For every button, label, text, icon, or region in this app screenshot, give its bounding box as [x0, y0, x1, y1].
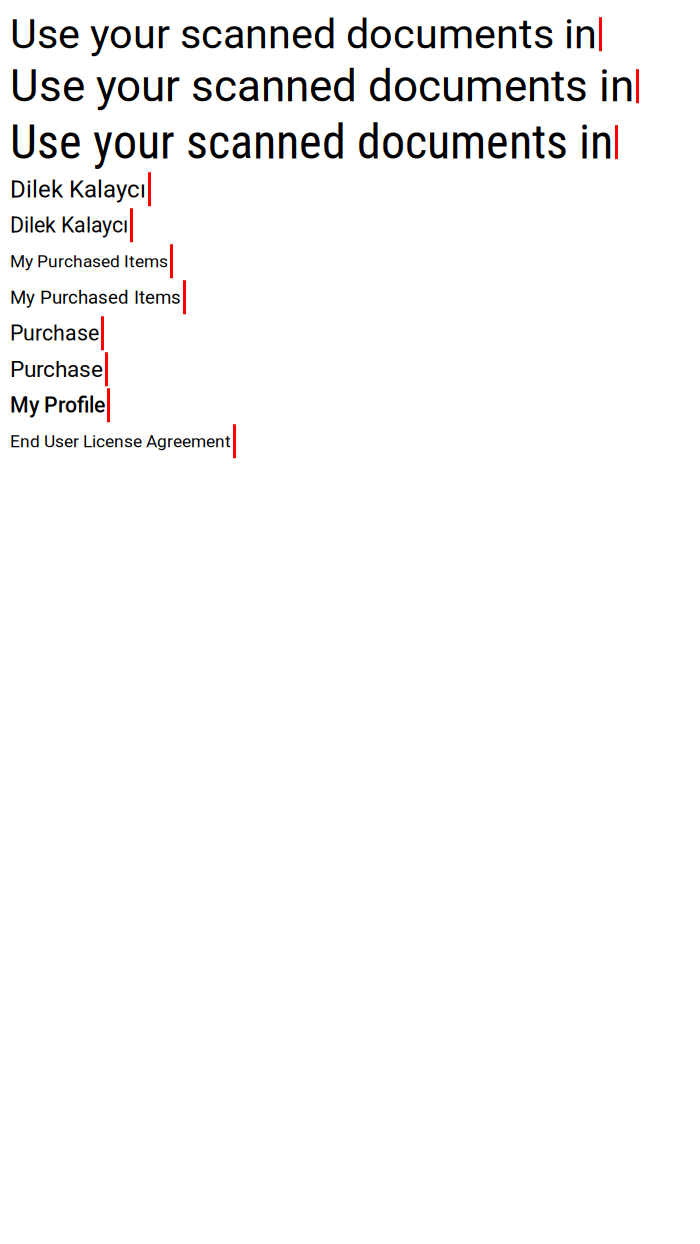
- staticText: Purchase: [10, 321, 99, 346]
- staticText: Dilek Kalaycı: [10, 213, 128, 238]
- staticText: End User License Agreement: [10, 431, 231, 451]
- staticText: Use your scanned documents in: [10, 10, 597, 58]
- staticText: Use your scanned documents in: [10, 114, 613, 170]
- staticText: Purchase: [10, 356, 103, 383]
- staticText: Use your scanned documents in: [10, 60, 634, 112]
- staticText: My Purchased Items: [10, 286, 181, 308]
- staticText: My Purchased Items: [10, 251, 168, 271]
- staticText: Dilek Kalaycı: [10, 175, 146, 203]
- staticText: My Profile: [10, 393, 105, 418]
